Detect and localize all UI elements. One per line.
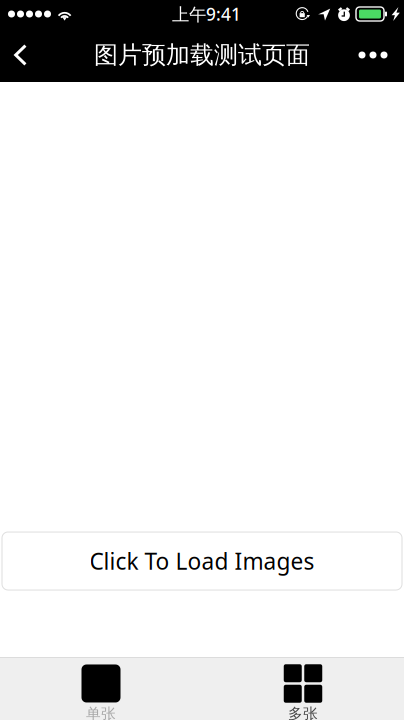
navigationBar: 图片预加载测试页面 xyxy=(0,28,404,82)
tab[interactable]: 单张 xyxy=(0,657,202,720)
staticText: 单张 xyxy=(86,704,116,720)
button[interactable]: More options xyxy=(351,33,395,77)
staticText: 图片预加载测试页面 xyxy=(94,40,310,70)
tabGroup: Tab Bar xyxy=(0,657,404,720)
staticText: 上午9:41 xyxy=(172,2,241,25)
button[interactable]: 单张 xyxy=(0,657,202,720)
staticText: Click To Load Images xyxy=(89,546,314,576)
button[interactable]: Click To Load Images xyxy=(2,532,402,590)
staticText: 多张 xyxy=(288,704,318,720)
button[interactable]: Back xyxy=(14,33,54,77)
button[interactable]: 多张 xyxy=(202,657,404,720)
tab[interactable]: 多张 xyxy=(202,657,404,720)
